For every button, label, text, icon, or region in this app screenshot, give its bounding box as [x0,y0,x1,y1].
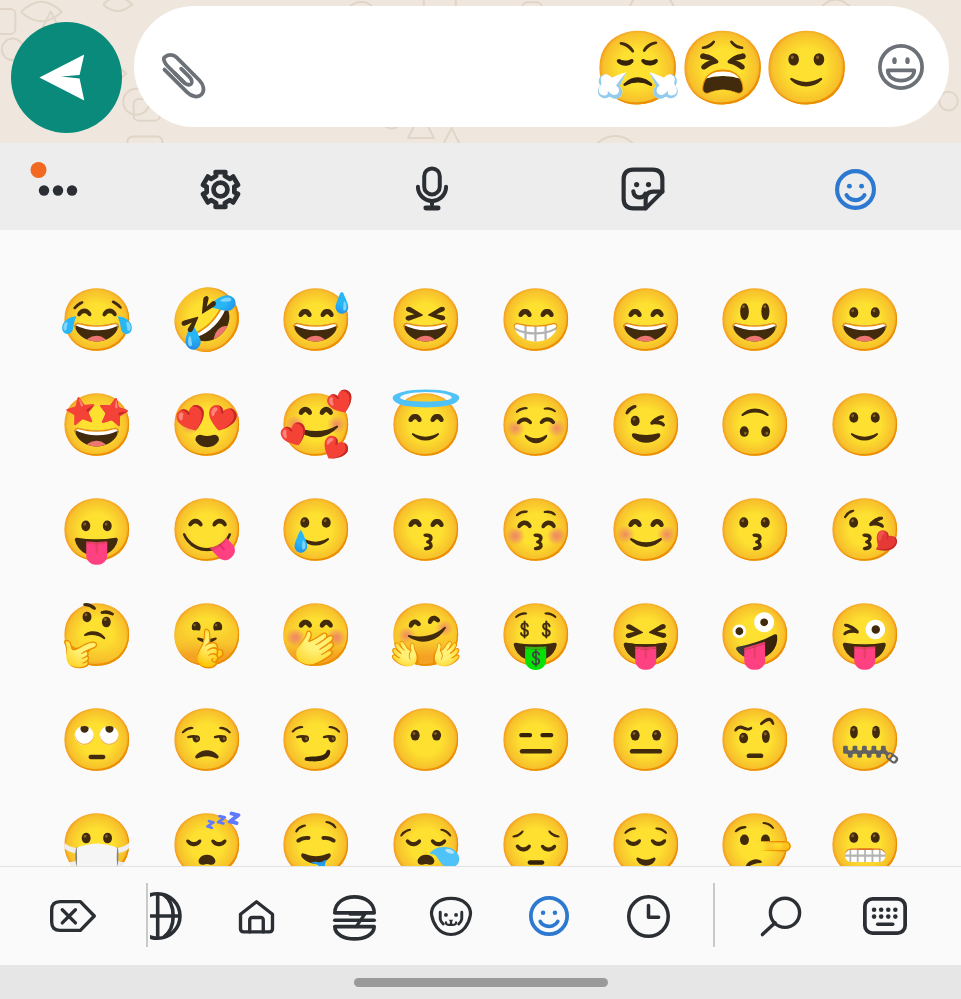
button[interactable]: 😙 [376,479,476,579]
staticText: 😉 [608,389,684,460]
button[interactable]: Emoji [819,153,891,225]
staticText: 😀 [827,284,903,355]
staticText: 😊 [608,494,684,565]
button[interactable]: Settings [184,153,256,225]
button[interactable]: 😄 [596,269,696,369]
button[interactable]: More options [22,151,94,223]
button[interactable]: 🙄 [47,689,147,789]
button[interactable]: 😏 [266,689,366,789]
button[interactable]: 🥰 [266,374,366,474]
button[interactable]: 😷 [47,794,147,894]
button[interactable]: Voice [396,153,468,225]
button[interactable]: 🤨 [705,689,805,789]
button[interactable]: 🤪 [705,584,805,684]
staticText: 😔 [498,809,574,880]
staticText: 🙃 [717,389,793,460]
button[interactable]: Food [318,880,390,952]
button[interactable]: Smileys [513,880,585,952]
staticText: 😷 [59,809,135,880]
button[interactable]: Keyboard [849,880,921,952]
button[interactable]: 😒 [157,689,257,789]
button[interactable]: 😘 [815,479,915,579]
staticText: 🤔 [59,599,135,670]
button[interactable]: 🤤 [266,794,366,894]
staticText: 😶 [388,704,464,775]
button[interactable]: 🤑 [486,584,586,684]
button[interactable]: Activities [150,880,196,952]
button[interactable]: 😛 [47,479,147,579]
staticText: 🤗 [388,599,464,670]
button[interactable]: 😜 [815,584,915,684]
button[interactable]: 😴 [157,794,257,894]
button[interactable]: 🤔 [47,584,147,684]
staticText: 😛 [59,494,135,565]
button[interactable]: 😬 [815,794,915,894]
button[interactable]: 🤗 [376,584,476,684]
button[interactable]: 😪 [376,794,476,894]
button[interactable]: Search [745,880,817,952]
button[interactable]: 😁 [486,269,586,369]
button[interactable]: ☺️ [486,374,586,474]
button[interactable]: Attach [134,6,949,127]
button[interactable]: 😐 [596,689,696,789]
button[interactable]: 🤭 [266,584,366,684]
staticText: 😆 [388,284,464,355]
staticText: 😜 [827,599,903,670]
button[interactable]: 😉 [596,374,696,474]
staticText: 😤 [593,26,677,110]
button[interactable]: Emoji [867,33,935,101]
button[interactable]: 🤐 [815,689,915,789]
button[interactable]: 🤩 [47,374,147,474]
button[interactable]: 😀 [815,269,915,369]
button[interactable]: 🙂 [762,26,846,110]
button[interactable]: 😤 [593,26,677,110]
staticText: 😍 [169,389,245,460]
staticText: 🙂 [762,26,846,110]
staticText: 🤫 [169,599,245,670]
staticText: 😘 [827,494,903,565]
staticText: 😴 [169,809,245,880]
staticText: 😝 [608,599,684,670]
button[interactable]: 😅 [266,269,366,369]
button[interactable]: Home [220,880,292,952]
button[interactable]: 😆 [376,269,476,369]
button[interactable]: 😚 [486,479,586,579]
button[interactable]: 🙃 [705,374,805,474]
button[interactable]: Stickers [607,153,679,225]
button[interactable]: 😊 [596,479,696,579]
button[interactable]: 😗 [705,479,805,579]
button[interactable]: 😋 [157,479,257,579]
staticText: 🤨 [717,704,793,775]
button[interactable]: Send [11,22,122,133]
staticText: 🥲 [278,494,354,565]
button[interactable]: 😝 [596,584,696,684]
button[interactable]: 😔 [486,794,586,894]
button[interactable]: Animals [415,880,487,952]
button[interactable]: 😶 [376,689,476,789]
button[interactable]: 😌 [596,794,696,894]
staticText: 🤣 [169,284,245,355]
button[interactable]: 😂 [47,269,147,369]
button[interactable]: 😍 [157,374,257,474]
button[interactable]: 🤥 [705,794,805,894]
staticText: 🤩 [59,389,135,460]
staticText: 😙 [388,494,464,565]
button[interactable]: 😫 [678,26,762,110]
staticText: 😐 [608,704,684,775]
staticText: 🤥 [717,809,793,880]
button[interactable]: 🙂 [815,374,915,474]
button[interactable]: Recent [612,880,684,952]
button[interactable]: Backspace [37,880,109,952]
button[interactable]: 🥲 [266,479,366,579]
staticText: 🤑 [498,599,574,670]
button[interactable]: 😃 [705,269,805,369]
button[interactable]: 😑 [486,689,586,789]
staticText: ☺️ [498,389,574,460]
button[interactable]: 🤣 [157,269,257,369]
button[interactable]: 😇 [376,374,476,474]
staticText: 🤭 [278,599,354,670]
staticText: 🙄 [59,704,135,775]
button[interactable]: Attach [153,46,213,106]
staticText: 😬 [827,809,903,880]
button[interactable]: 🤫 [157,584,257,684]
